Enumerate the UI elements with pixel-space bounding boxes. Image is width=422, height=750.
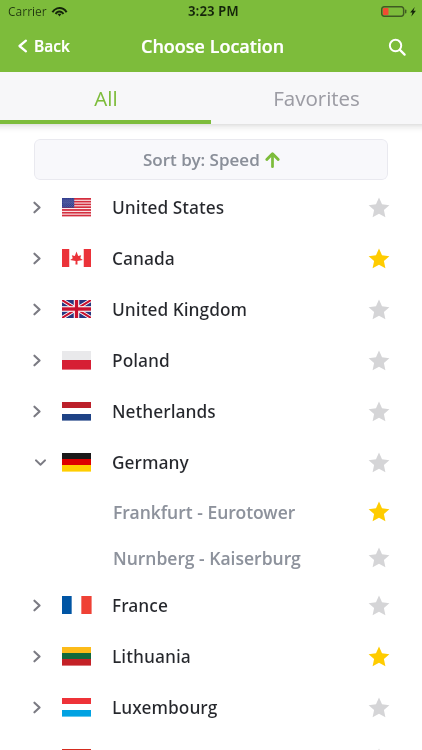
staticText: Canada xyxy=(112,247,175,271)
button[interactable]: Favorites xyxy=(211,72,422,124)
staticText: Favorites xyxy=(273,84,360,112)
button[interactable]: Germany xyxy=(0,437,422,488)
button[interactable]: United Kingdom xyxy=(0,284,422,335)
staticText: All xyxy=(94,84,118,112)
button[interactable]: All xyxy=(0,72,211,124)
staticText: 3:23 PM xyxy=(188,2,239,20)
staticText: Nurnberg - Kaiserburg xyxy=(113,546,301,570)
staticText: Lithuania xyxy=(112,645,191,669)
staticText: Carrier xyxy=(8,3,47,19)
staticText: Back xyxy=(34,35,70,56)
button[interactable]: Sort by: Speed xyxy=(34,139,388,180)
staticText: United States xyxy=(112,196,225,220)
staticText: Luxembourg xyxy=(112,696,218,720)
button[interactable]: Frankfurt - Eurotower xyxy=(0,488,422,535)
button[interactable]: Lithuania xyxy=(0,631,422,682)
button[interactable]: Nurnberg - Kaiserburg xyxy=(0,535,422,580)
staticText: France xyxy=(112,594,168,618)
staticText: United Kingdom xyxy=(112,298,248,322)
button[interactable]: Switzerland xyxy=(0,733,422,750)
button[interactable]: Canada xyxy=(0,233,422,284)
staticText: Sort by: Speed xyxy=(143,148,260,171)
button[interactable]: France xyxy=(0,580,422,631)
staticText: Netherlands xyxy=(112,400,216,424)
button[interactable]: Luxembourg xyxy=(0,682,422,733)
button[interactable]: United States xyxy=(0,182,422,233)
button[interactable]: Search xyxy=(375,27,422,68)
staticText: Frankfurt - Eurotower xyxy=(113,500,296,524)
button[interactable]: Back xyxy=(0,29,84,66)
button[interactable]: Netherlands xyxy=(0,386,422,437)
staticText: Choose Location xyxy=(141,34,285,59)
button[interactable]: Poland xyxy=(0,335,422,386)
staticText: Poland xyxy=(112,349,170,373)
staticText: Germany xyxy=(112,451,189,475)
